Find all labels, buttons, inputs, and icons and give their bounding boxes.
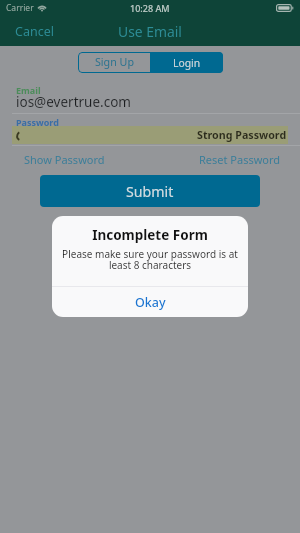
- staticText: ios@evertrue.com: [16, 93, 131, 111]
- button[interactable]: Submit: [40, 175, 260, 207]
- staticText: Incomplete Form: [92, 226, 208, 244]
- button[interactable]: Reset Password: [199, 152, 281, 167]
- staticText: Login: [173, 56, 201, 70]
- button[interactable]: Login: [150, 52, 223, 73]
- button[interactable]: Sign Up: [78, 52, 150, 73]
- staticText: Cancel: [15, 23, 54, 40]
- button[interactable]: Cancel: [15, 23, 54, 40]
- staticText: Email: [16, 84, 41, 96]
- staticText: Submit: [126, 182, 174, 201]
- staticText: Password: [16, 116, 59, 128]
- staticText: Use Email: [118, 22, 182, 41]
- staticText: Please make sure your password is at lea…: [60, 247, 240, 272]
- button[interactable]: Okay: [52, 287, 248, 317]
- staticText: Reset Password: [199, 152, 281, 167]
- staticText: Strong Password: [197, 128, 287, 143]
- staticText: Sign Up: [95, 55, 134, 70]
- staticText: Okay: [135, 294, 166, 311]
- staticText: Show Password: [24, 152, 105, 167]
- staticText: Carrier: [6, 2, 34, 14]
- staticText: 10:28 AM: [130, 2, 170, 14]
- button[interactable]: Show Password: [24, 152, 105, 167]
